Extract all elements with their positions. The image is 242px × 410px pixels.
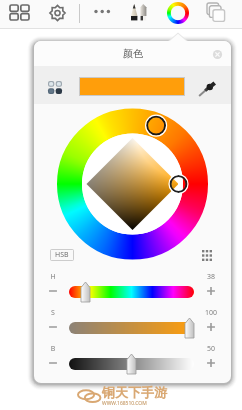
button[interactable]: Layers: [207, 3, 227, 23]
button[interactable]: Decrease H: [46, 284, 60, 298]
button[interactable]: Decrease S: [46, 320, 60, 334]
button[interactable]: Color: [167, 2, 189, 24]
staticText: B: [48, 344, 58, 354]
button[interactable]: Increase S: [204, 320, 218, 334]
staticText: WWW.168510.COM: [102, 400, 147, 407]
staticText: 50: [200, 344, 222, 354]
button[interactable]: Settings: [49, 5, 66, 21]
button[interactable]: Increase H: [204, 284, 218, 298]
button[interactable]: Swatches: [202, 250, 212, 261]
button[interactable]: Decrease B: [46, 356, 60, 370]
button[interactable]: Eyedropper: [198, 81, 217, 97]
staticText: H: [48, 272, 58, 282]
staticText: 颜色: [123, 47, 143, 60]
staticText: S: [48, 308, 58, 318]
button[interactable]: Palette: [48, 81, 62, 94]
staticText: 38: [200, 272, 222, 282]
button[interactable]: HSB: [51, 250, 73, 260]
button[interactable]: Grid: [10, 5, 29, 20]
button[interactable]: Brush: [130, 2, 150, 22]
button[interactable]: Increase B: [204, 356, 218, 370]
button[interactable]: More: [90, 4, 114, 22]
staticText: HSB: [55, 250, 69, 260]
staticText: 100: [200, 308, 222, 318]
staticText: 铜天下手游: [102, 384, 167, 400]
button[interactable]: Close: [212, 49, 223, 60]
